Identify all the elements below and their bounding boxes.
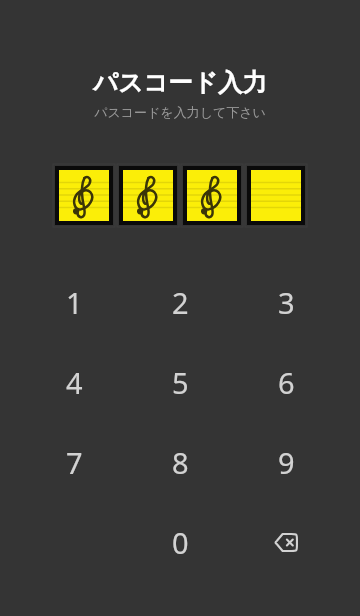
staticText: 8 [172, 443, 189, 482]
staticText: パスコードを入力して下さい [0, 104, 360, 120]
button[interactable]: 6 [233, 342, 339, 422]
button[interactable]: 9 [233, 422, 339, 502]
button[interactable]: Entered digit [187, 170, 237, 221]
staticText: 4 [66, 363, 83, 402]
button[interactable]: 4 [21, 342, 127, 422]
button[interactable]: Delete [233, 502, 339, 582]
button[interactable]: 0 [127, 502, 233, 582]
staticText: 3 [278, 283, 295, 322]
staticText: パスコード入力 [0, 67, 360, 98]
button[interactable]: Entered digit [59, 170, 109, 221]
staticText: 6 [278, 363, 295, 402]
button[interactable]: Empty digit [251, 170, 301, 221]
staticText: 9 [278, 443, 295, 482]
other: Backspace [274, 533, 298, 552]
button[interactable]: 3 [233, 262, 339, 342]
staticText: 2 [172, 283, 189, 322]
staticText: 5 [172, 363, 189, 402]
button[interactable]: 7 [21, 422, 127, 502]
button[interactable]: 1 [21, 262, 127, 342]
staticText: 7 [66, 443, 83, 482]
button[interactable]: 2 [127, 262, 233, 342]
staticText: 1 [66, 283, 83, 322]
button[interactable]: 5 [127, 342, 233, 422]
button[interactable]: Entered digit [123, 170, 173, 221]
button[interactable]: 8 [127, 422, 233, 502]
staticText: 0 [172, 523, 189, 562]
